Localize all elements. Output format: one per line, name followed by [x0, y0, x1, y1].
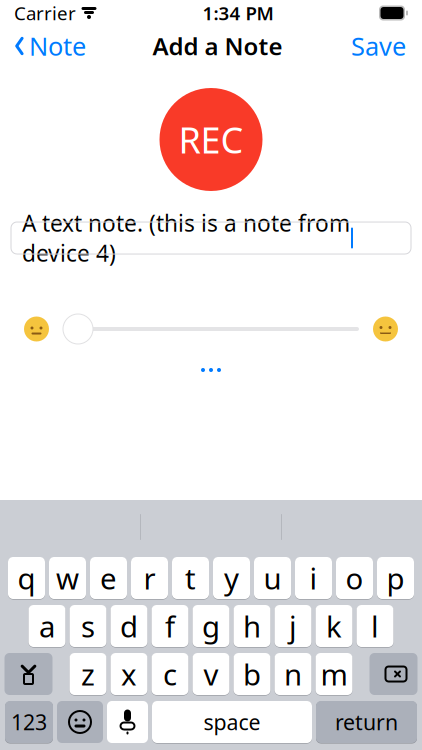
button[interactable]: f [151, 604, 188, 647]
staticText: p [386, 558, 404, 597]
staticText: A text note. (this is a note from device… [22, 208, 350, 268]
button[interactable]: Dictation [107, 700, 148, 743]
button[interactable]: Emoji [57, 700, 103, 743]
staticText: u [263, 558, 281, 597]
button[interactable]: j [274, 604, 311, 647]
staticText: 123 [11, 708, 47, 736]
button[interactable]: b [233, 652, 270, 695]
staticText: a [39, 606, 55, 645]
button[interactable]: l [356, 604, 393, 647]
staticText: n [284, 654, 302, 693]
staticText: d [120, 606, 138, 645]
staticText: o [345, 558, 363, 597]
button[interactable]: a [28, 604, 65, 647]
staticText: h [243, 606, 261, 645]
button[interactable]: w [49, 556, 86, 599]
staticText: g [202, 606, 220, 645]
staticText: y [224, 558, 239, 597]
staticText: b [243, 654, 261, 693]
button[interactable]: i [295, 556, 332, 599]
button[interactable]: v [192, 652, 229, 695]
button[interactable]: u [254, 556, 291, 599]
button[interactable]: q [8, 556, 45, 599]
button[interactable]: Delete [369, 652, 417, 695]
button[interactable]: More [193, 360, 229, 380]
staticText: v [203, 654, 218, 693]
staticText: t [185, 558, 196, 597]
button[interactable]: k [315, 604, 352, 647]
staticText: space [203, 708, 260, 736]
staticText: r [143, 558, 155, 597]
staticText: i [309, 558, 317, 597]
staticText: c [163, 654, 177, 693]
staticText: 1:34 PM [202, 1, 273, 25]
button[interactable]: x [110, 652, 147, 695]
button[interactable]: A text note. (this is a note from device… [11, 222, 411, 254]
staticText: return [335, 708, 398, 736]
button[interactable]: Mood slider [63, 314, 93, 344]
button[interactable]: r [131, 556, 168, 599]
button[interactable]: return [316, 700, 417, 743]
button[interactable]: n [274, 652, 311, 695]
button[interactable]: e [90, 556, 127, 599]
staticText: x [121, 654, 137, 693]
staticText: Save [351, 29, 406, 63]
staticText: q [17, 558, 35, 597]
button[interactable]: g [192, 604, 229, 647]
button[interactable]: p [377, 556, 414, 599]
button[interactable]: o [336, 556, 373, 599]
staticText: z [81, 654, 95, 693]
button[interactable]: y [213, 556, 250, 599]
staticText: j [289, 606, 297, 645]
button[interactable]: d [110, 604, 147, 647]
staticText: s [81, 606, 95, 645]
staticText: l [371, 606, 379, 645]
staticText: Add a Note [152, 30, 282, 62]
staticText: f [165, 606, 175, 645]
button[interactable]: s [69, 604, 106, 647]
button[interactable]: m [315, 652, 352, 695]
button[interactable]: 123 [5, 700, 53, 743]
button[interactable]: Shift [4, 652, 52, 695]
staticText: m [320, 654, 347, 693]
staticText: e [100, 558, 117, 597]
button[interactable]: Note [2, 21, 98, 71]
button[interactable]: Save [337, 21, 420, 71]
button[interactable]: REC [159, 88, 262, 191]
button[interactable]: h [233, 604, 270, 647]
staticText: w [56, 558, 79, 597]
staticText: REC [178, 116, 243, 163]
button[interactable]: c [151, 652, 188, 695]
button[interactable]: t [172, 556, 209, 599]
staticText: k [326, 606, 342, 645]
staticText: Carrier [14, 1, 76, 25]
button[interactable]: z [69, 652, 106, 695]
button[interactable]: space [152, 700, 312, 743]
staticText: Note [29, 29, 86, 63]
